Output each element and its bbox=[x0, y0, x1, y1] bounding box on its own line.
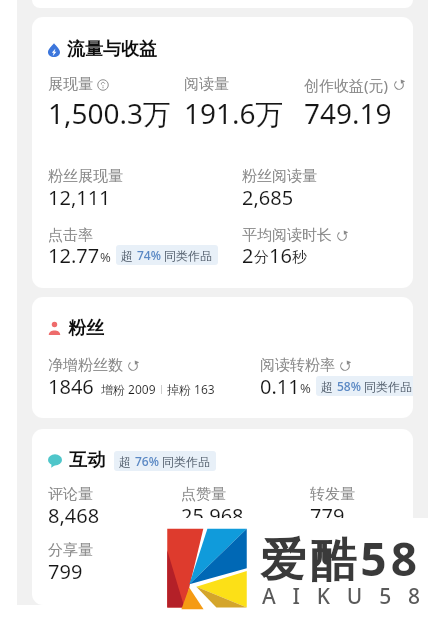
staticText: AIKU58 bbox=[262, 582, 437, 611]
button[interactable]: 超 bbox=[316, 376, 413, 396]
button[interactable]: 超 bbox=[116, 245, 218, 265]
staticText: 0.11 bbox=[260, 373, 300, 400]
button[interactable]: 粉丝 bbox=[48, 317, 104, 340]
staticText: 12,111 bbox=[48, 184, 111, 211]
staticText: 平均阅读时长 bbox=[242, 226, 332, 245]
staticText: 12.77 bbox=[48, 242, 100, 269]
staticText: 掉粉 163 bbox=[167, 381, 215, 397]
staticText: 评论量 bbox=[48, 485, 93, 504]
staticText: 爱酷58 bbox=[260, 527, 422, 590]
staticText: 粉丝展现量 bbox=[48, 167, 123, 186]
staticText: 分享量 bbox=[48, 541, 93, 560]
staticText: 1846 bbox=[48, 373, 94, 400]
staticText: 增粉 2009 bbox=[101, 381, 156, 397]
staticText: 粉丝 bbox=[68, 317, 104, 340]
button[interactable]: 互动 bbox=[48, 449, 216, 472]
staticText: 流量与收益 bbox=[67, 38, 157, 61]
staticText: 创作收益(元) bbox=[304, 75, 389, 95]
staticText: 74% bbox=[137, 247, 161, 263]
staticText: 2 bbox=[242, 242, 254, 269]
staticText: 2,685 bbox=[242, 184, 294, 211]
staticText: 超 bbox=[321, 378, 337, 394]
staticText: 58% bbox=[337, 378, 361, 394]
staticText: 秒 bbox=[292, 248, 307, 267]
staticText: 阅读量 bbox=[184, 75, 229, 94]
button[interactable]: 超 bbox=[114, 451, 216, 471]
staticText: 749.19 bbox=[304, 94, 392, 132]
staticText: 8,468 bbox=[48, 502, 100, 529]
staticText: % bbox=[300, 379, 311, 397]
staticText: 净增粉丝数 bbox=[48, 356, 123, 375]
staticText: 同类作品 bbox=[159, 453, 211, 469]
staticText: 779 bbox=[310, 502, 345, 529]
staticText: 展现量 bbox=[48, 75, 93, 94]
staticText: % bbox=[100, 248, 111, 266]
staticText: 1,500.3万 bbox=[48, 94, 172, 132]
staticText: 点击率 bbox=[48, 226, 93, 245]
staticText: 16 bbox=[269, 242, 292, 269]
staticText: 25,968 bbox=[181, 502, 244, 529]
staticText: 分 bbox=[254, 248, 269, 267]
staticText: 76% bbox=[135, 453, 159, 469]
staticText: 互动 bbox=[69, 449, 105, 472]
staticText: 191.6万 bbox=[184, 94, 284, 132]
staticText: 阅读转粉率 bbox=[260, 356, 335, 375]
staticText: 点赞量 bbox=[181, 485, 226, 504]
staticText: 超 bbox=[119, 453, 135, 469]
staticText: 超 bbox=[121, 247, 137, 263]
staticText: 粉丝阅读量 bbox=[242, 167, 317, 186]
button[interactable]: 流量与收益 bbox=[48, 38, 157, 61]
staticText: 同类作品 bbox=[161, 247, 213, 263]
staticText: 同类作品 bbox=[361, 378, 413, 394]
staticText: 转发量 bbox=[310, 485, 355, 504]
staticText: 799 bbox=[48, 558, 83, 585]
